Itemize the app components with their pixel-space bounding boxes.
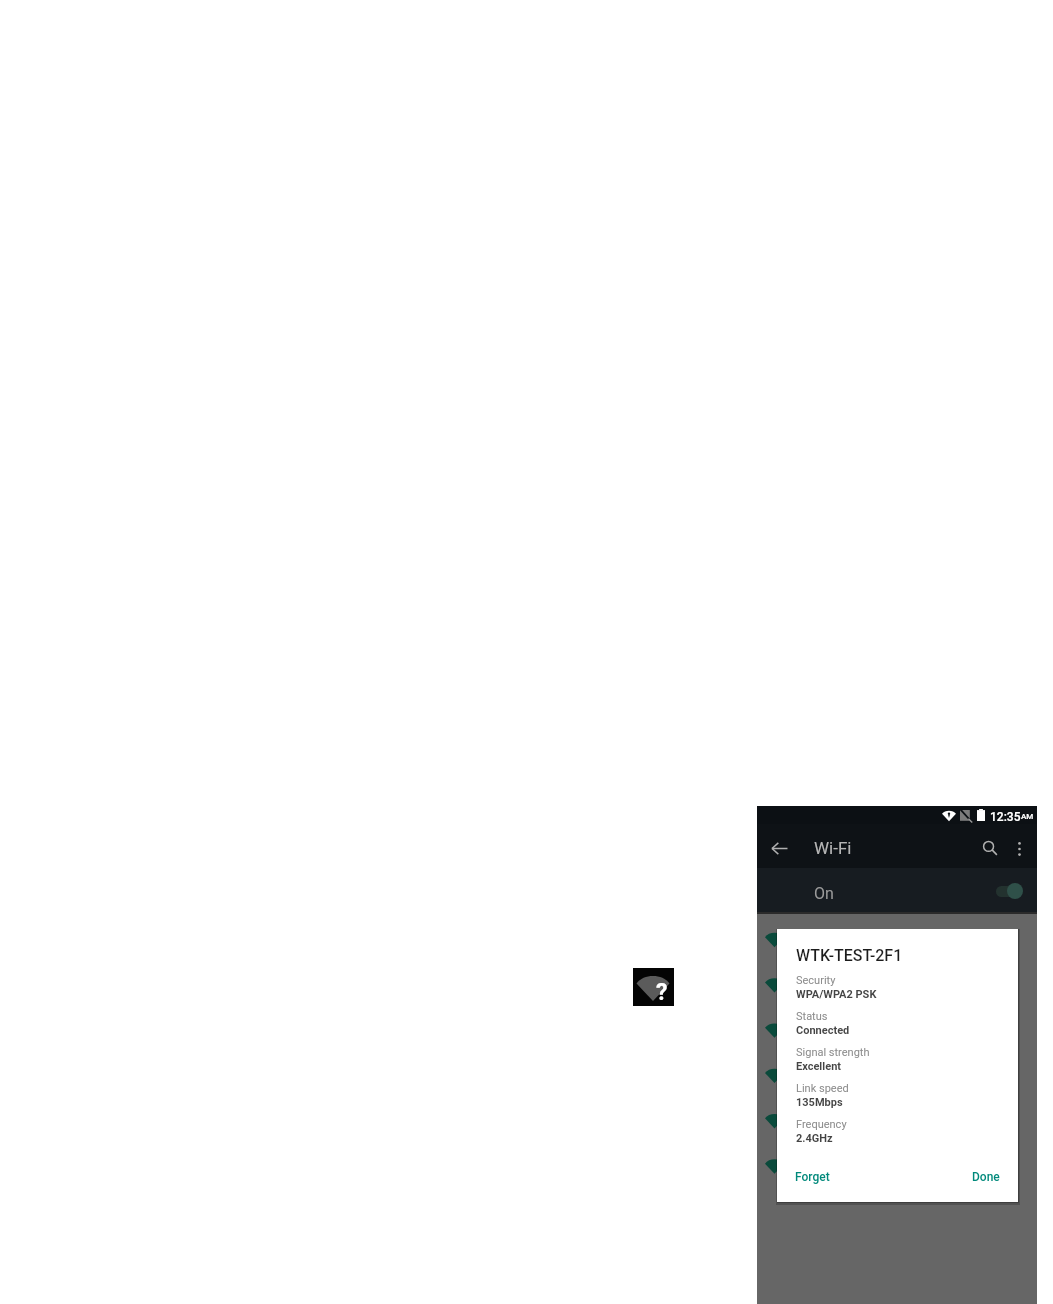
staticText: Security (796, 974, 836, 987)
button[interactable]: Back (757, 824, 801, 867)
staticText: 135Mbps (796, 1096, 843, 1109)
staticText: Wi-Fi (814, 838, 852, 858)
button[interactable]: Done (965, 1161, 1007, 1193)
staticText: 2.4GHz (796, 1132, 833, 1145)
button[interactable]: Wi-Fi unknown (633, 968, 674, 1006)
staticText: AM (1021, 812, 1034, 821)
staticText: WTK-TEST-2F1 (796, 946, 903, 965)
button[interactable]: Wi-Fi network (757, 969, 1037, 1014)
button[interactable]: Wi-Fi network (757, 1105, 1037, 1150)
button[interactable]: Wi-Fi network (757, 1015, 1037, 1060)
button[interactable]: On (757, 868, 1037, 912)
button[interactable]: Search (970, 826, 1010, 866)
button[interactable]: More options (1005, 826, 1033, 866)
staticText: Link speed (796, 1082, 849, 1095)
button[interactable]: Forget (788, 1161, 837, 1193)
staticText: Frequency (796, 1118, 847, 1131)
staticText: WPA/WPA2 PSK (796, 988, 877, 1001)
staticText: On (814, 884, 834, 903)
staticText: ? (656, 979, 668, 1006)
staticText: Connected (796, 1024, 850, 1037)
button[interactable]: Wi-Fi network (757, 1060, 1037, 1105)
staticText: 12:35 (990, 810, 1021, 824)
staticText: Excellent (796, 1060, 842, 1073)
button[interactable]: Wi-Fi network (757, 924, 1037, 969)
staticText: Signal strength (796, 1046, 870, 1059)
staticText: Status (796, 1010, 828, 1023)
button[interactable]: Wi-Fi network (757, 1151, 1037, 1196)
staticText: Done (972, 1170, 1000, 1184)
staticText: Forget (795, 1170, 830, 1184)
